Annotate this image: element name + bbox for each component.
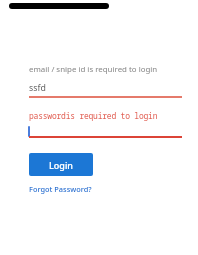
staticText: Forgot Password?: [29, 184, 92, 194]
staticText: passwordis required to login: [29, 110, 158, 121]
button[interactable]: Forgot Password?: [29, 184, 92, 194]
staticText: email / snipe id is required to login: [29, 64, 158, 75]
staticText: Login: [49, 159, 73, 171]
button[interactable]: Login: [29, 153, 93, 176]
staticText: ssfd: [29, 82, 46, 94]
